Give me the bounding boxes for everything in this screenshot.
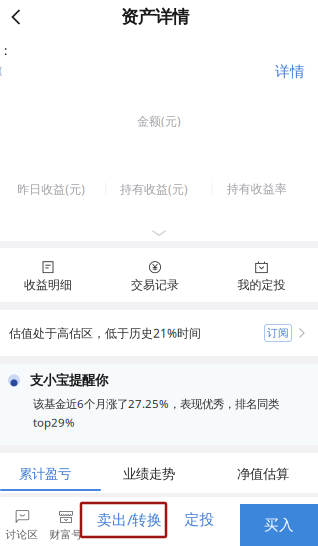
- button[interactable]: Back: [0, 1, 33, 33]
- button[interactable]: 卖出/转换: [88, 497, 171, 542]
- staticText: 讨论区: [5, 528, 38, 541]
- button[interactable]: 业绩走势: [90, 455, 208, 493]
- staticText: 支小宝提醒你: [30, 372, 108, 389]
- staticText: (: [0, 63, 2, 78]
- staticText: 收益明细: [24, 277, 72, 292]
- staticText: 交易记录: [131, 277, 179, 292]
- staticText: 该基金近6个月涨了27.25%，表现优秀，排名同类: [33, 396, 279, 411]
- staticText: 净值估算: [237, 466, 289, 482]
- staticText: 估值处于高估区，低于历史21%时间: [9, 325, 201, 341]
- button[interactable]: 估值处于高估区，低于历史21%时间: [0, 310, 318, 356]
- button[interactable]: 收益明细: [0, 248, 96, 302]
- button[interactable]: 定投: [171, 497, 228, 542]
- staticText: top29%: [33, 414, 75, 430]
- staticText: 业绩走势: [123, 466, 175, 482]
- staticText: 订阅: [267, 326, 289, 340]
- staticText: 财富号: [49, 528, 82, 541]
- button[interactable]: 买入: [240, 497, 318, 546]
- staticText: 金额(元): [137, 113, 181, 129]
- staticText: 资产详情: [121, 6, 189, 28]
- button[interactable]: 讨论区: [0, 497, 44, 546]
- staticText: 持有收益率: [227, 181, 287, 196]
- staticText: 累计盈亏: [19, 466, 71, 482]
- staticText: 买入: [264, 516, 294, 534]
- staticText: 定投: [184, 510, 214, 529]
- staticText: 详情: [275, 62, 305, 81]
- staticText: ：: [0, 42, 12, 59]
- button[interactable]: 交易记录: [96, 248, 214, 302]
- staticText: 卖出/转换: [97, 509, 162, 529]
- button[interactable]: 详情: [275, 33, 318, 81]
- button[interactable]: 累计盈亏: [0, 455, 90, 493]
- staticText: 持有收益(元): [120, 181, 188, 197]
- button[interactable]: 我的定投: [214, 248, 309, 302]
- staticText: 我的定投: [237, 277, 285, 292]
- button[interactable]: 财富号: [44, 497, 88, 546]
- button[interactable]: 净值估算: [208, 455, 318, 493]
- staticText: 昨日收益(元): [17, 181, 85, 197]
